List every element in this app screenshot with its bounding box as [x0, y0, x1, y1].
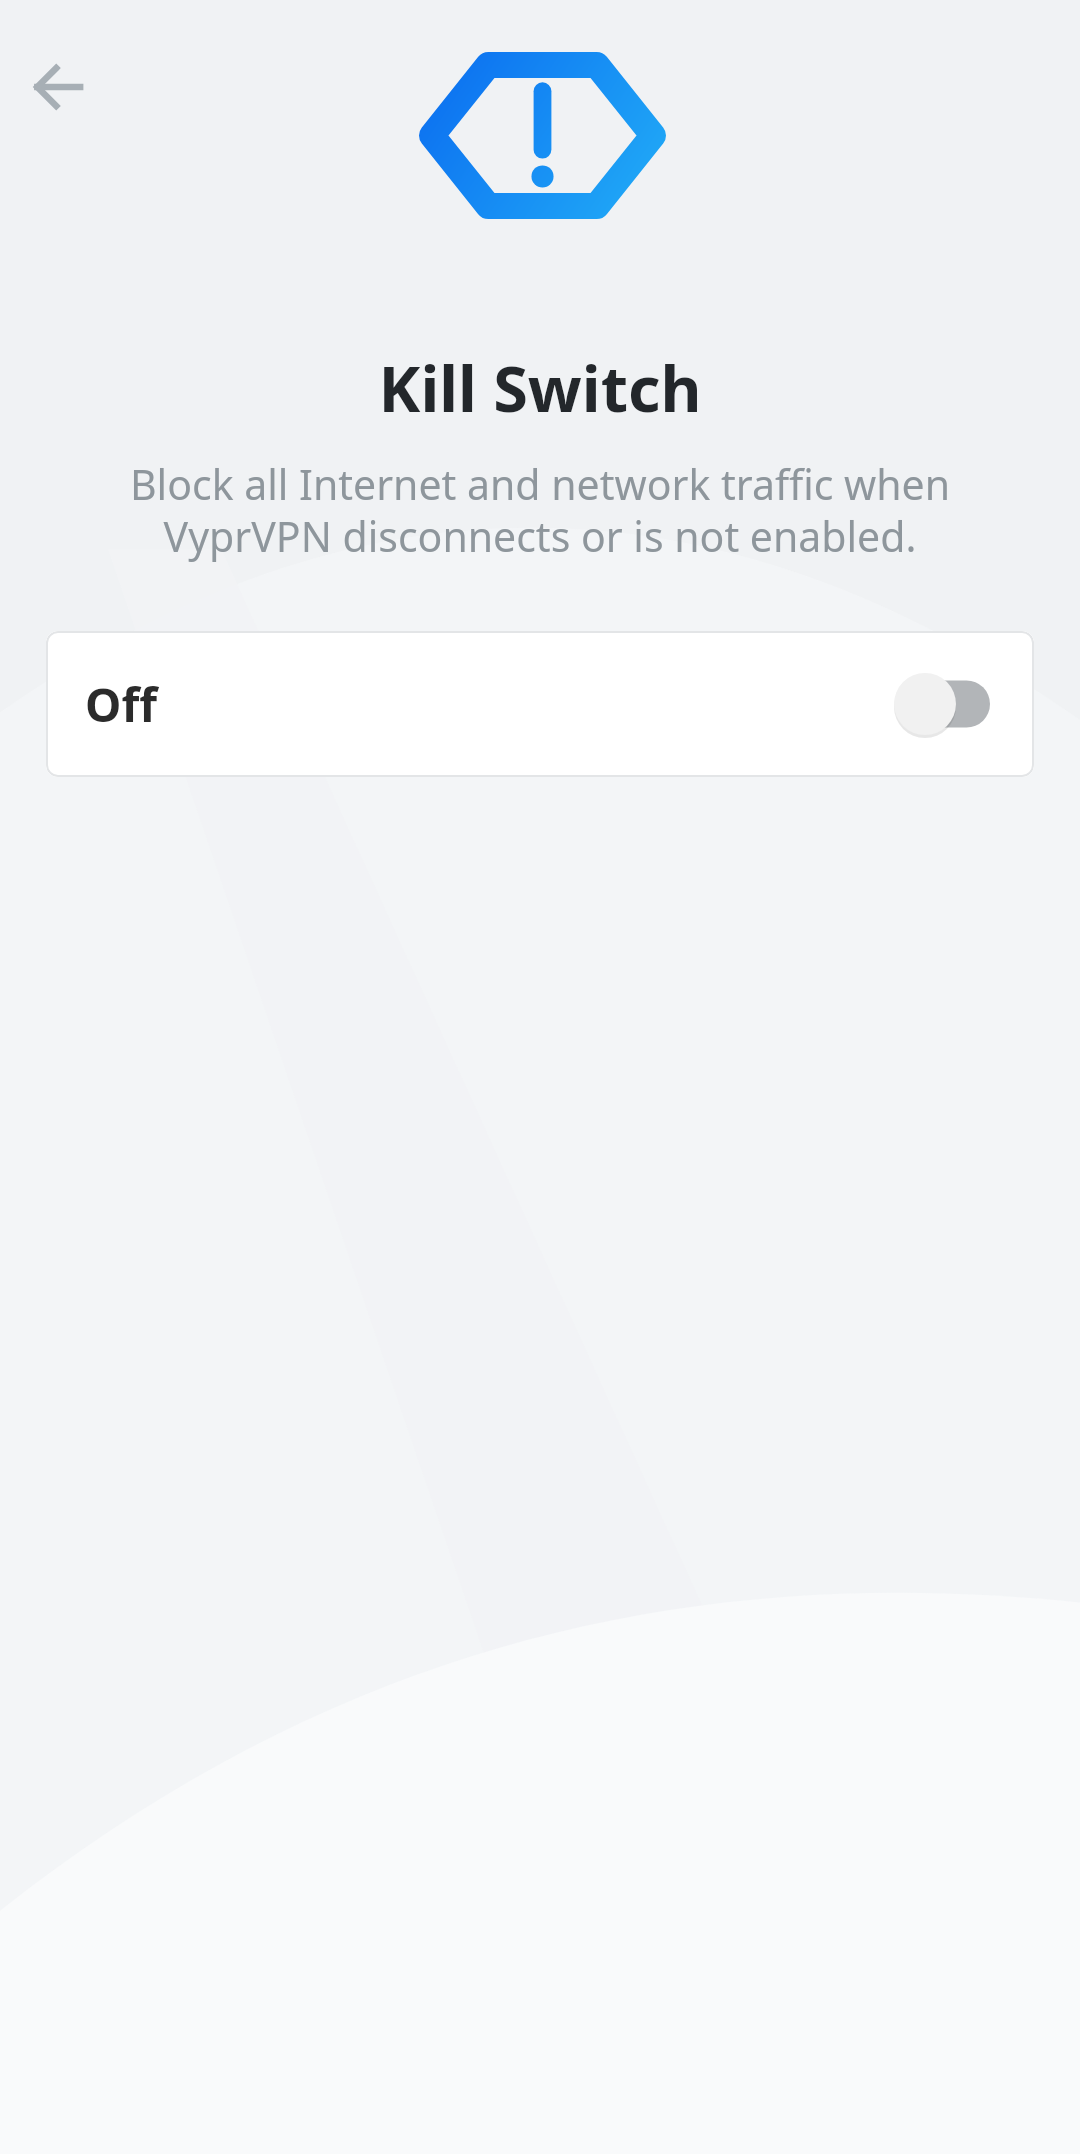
staticText: Block all Internet and network traffic w… [76, 456, 1004, 564]
staticText: Off [85, 673, 157, 736]
button[interactable]: Off [46, 631, 1034, 777]
staticText: Kill Switch [0, 345, 1080, 431]
other: Kill Switch toggle, off [894, 673, 990, 735]
button[interactable]: Back [18, 45, 102, 129]
